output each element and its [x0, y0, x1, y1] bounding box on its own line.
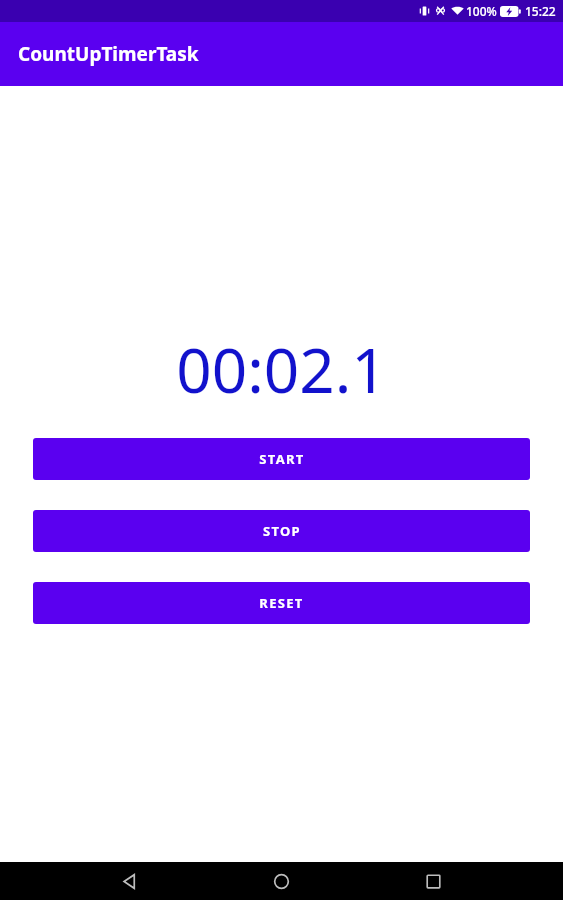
- staticText: 15:22: [525, 3, 556, 19]
- staticText: 00:02.1: [176, 327, 387, 411]
- button[interactable]: Back: [107, 862, 151, 900]
- button[interactable]: START: [33, 438, 530, 480]
- button[interactable]: Recent apps: [411, 862, 455, 900]
- staticText: RESET: [259, 594, 304, 612]
- staticText: STOP: [263, 522, 301, 540]
- staticText: CountUpTimerTask: [18, 41, 199, 67]
- button[interactable]: STOP: [33, 510, 530, 552]
- staticText: 100%: [466, 3, 497, 19]
- button[interactable]: Home: [259, 862, 303, 900]
- button[interactable]: RESET: [33, 582, 530, 624]
- staticText: START: [259, 450, 305, 468]
